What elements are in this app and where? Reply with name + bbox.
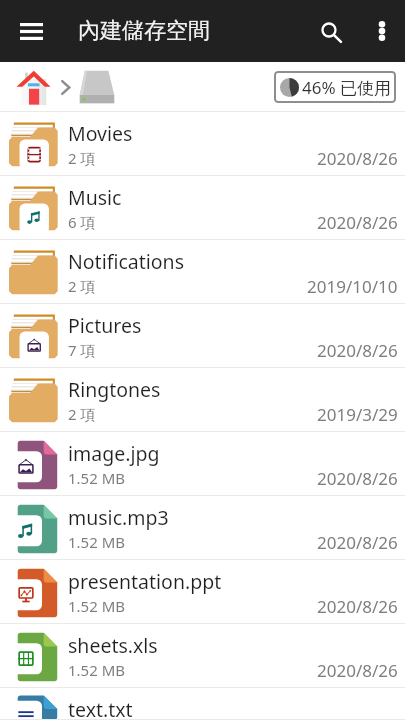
staticText: 1.52 MB bbox=[68, 596, 126, 616]
button[interactable]: text.txt bbox=[0, 688, 405, 720]
staticText: Ringtones bbox=[68, 376, 161, 403]
button[interactable]: Ringtones bbox=[0, 368, 405, 432]
staticText: 6 項 bbox=[68, 212, 96, 232]
staticText: image.jpg bbox=[68, 440, 160, 467]
staticText: 1.52 MB bbox=[68, 660, 126, 680]
button[interactable]: Home bbox=[16, 69, 52, 105]
button[interactable]: image.jpg bbox=[0, 432, 405, 496]
button[interactable]: Menu bbox=[0, 0, 63, 62]
staticText: 2019/3/29 bbox=[317, 403, 398, 426]
staticText: Music bbox=[68, 184, 122, 211]
button[interactable]: Movies bbox=[0, 112, 405, 176]
staticText: 1.52 MB bbox=[68, 468, 126, 488]
staticText: 內建儲存空間 bbox=[78, 17, 210, 45]
staticText: 2 項 bbox=[68, 404, 96, 424]
staticText: Movies bbox=[68, 120, 133, 147]
button[interactable]: More options bbox=[359, 0, 405, 62]
button[interactable]: Pictures bbox=[0, 304, 405, 368]
staticText: Pictures bbox=[68, 312, 142, 339]
button[interactable]: sheets.xls bbox=[0, 624, 405, 688]
staticText: 46% 已使用 bbox=[302, 76, 391, 99]
staticText: sheets.xls bbox=[68, 632, 158, 659]
staticText: 2020/8/26 bbox=[317, 595, 398, 618]
staticText: 2 項 bbox=[68, 276, 96, 296]
staticText: 2020/8/26 bbox=[317, 147, 398, 170]
staticText: Notifications bbox=[68, 248, 184, 275]
button[interactable]: Search bbox=[303, 0, 359, 62]
staticText: 2020/8/26 bbox=[317, 467, 398, 490]
staticText: music.mp3 bbox=[68, 504, 169, 531]
staticText: 2020/8/26 bbox=[317, 339, 398, 362]
button[interactable]: Notifications bbox=[0, 240, 405, 304]
staticText: 2020/8/26 bbox=[317, 659, 398, 682]
button[interactable]: 46% 已使用 bbox=[274, 71, 396, 103]
staticText: 7 項 bbox=[68, 340, 96, 360]
button[interactable]: music.mp3 bbox=[0, 496, 405, 560]
staticText: 1.52 MB bbox=[68, 532, 126, 552]
staticText: 2019/10/10 bbox=[307, 275, 398, 298]
button[interactable]: presentation.ppt bbox=[0, 560, 405, 624]
staticText: text.txt bbox=[68, 696, 133, 720]
staticText: 2020/8/26 bbox=[317, 211, 398, 234]
button[interactable]: Internal storage bbox=[78, 66, 116, 108]
button[interactable]: Music bbox=[0, 176, 405, 240]
staticText: 2020/8/26 bbox=[317, 531, 398, 554]
staticText: presentation.ppt bbox=[68, 568, 222, 595]
staticText: 2 項 bbox=[68, 148, 96, 168]
